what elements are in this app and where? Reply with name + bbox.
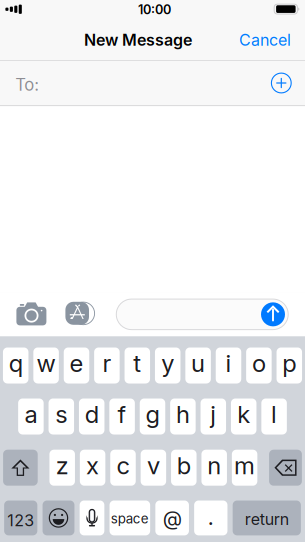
staticText: l [271, 400, 277, 429]
button[interactable]: Delete [269, 450, 302, 486]
button[interactable]: i [216, 347, 241, 383]
staticText: n [207, 451, 221, 480]
staticText: z [56, 451, 69, 480]
button[interactable]: h [170, 398, 196, 434]
button[interactable]: Dictation [80, 500, 104, 535]
button[interactable]: App Store [66, 301, 95, 325]
button[interactable]: k [231, 398, 256, 434]
button[interactable]: f [109, 398, 135, 434]
button[interactable]: m [232, 450, 257, 486]
staticText: s [55, 400, 67, 429]
staticText: b [177, 451, 191, 480]
button[interactable]: z [49, 450, 75, 486]
button[interactable]: c [110, 450, 136, 486]
staticText: h [176, 400, 190, 429]
staticText: New Message [84, 30, 192, 50]
button[interactable]: Camera [16, 302, 46, 325]
button[interactable]: q [3, 347, 28, 383]
button[interactable]: w [33, 347, 59, 383]
staticText: p [282, 349, 296, 378]
button[interactable]: y [155, 347, 180, 383]
button[interactable]: Send [261, 302, 285, 326]
staticText: Cancel [239, 30, 291, 50]
staticText: d [85, 400, 99, 429]
button[interactable]: Emoji [43, 500, 74, 535]
button[interactable]: 123 [4, 500, 37, 535]
staticText: r [102, 349, 111, 378]
button[interactable]: x [80, 450, 105, 486]
staticText: k [237, 400, 250, 429]
button[interactable]: Add contact [266, 68, 296, 98]
staticText: 123 [7, 511, 34, 530]
button[interactable]: @ [155, 500, 189, 535]
button[interactable]: u [185, 347, 211, 383]
button[interactable]: p [277, 347, 302, 383]
staticText: return [245, 509, 289, 529]
button[interactable]: l [261, 398, 287, 434]
staticText: q [9, 349, 23, 378]
staticText: To: [15, 75, 39, 95]
staticText: j [210, 400, 216, 429]
staticText: x [86, 451, 99, 480]
staticText: i [225, 349, 231, 378]
staticText: @ [163, 506, 182, 530]
staticText: c [116, 451, 129, 480]
staticText: g [145, 400, 159, 429]
staticText: u [191, 349, 205, 378]
staticText: space [111, 510, 149, 527]
button[interactable]: s [49, 398, 74, 434]
staticText: w [37, 349, 56, 378]
button[interactable]: d [79, 398, 104, 434]
staticText: t [133, 349, 141, 378]
staticText: v [147, 451, 160, 480]
button[interactable]: Shift [3, 450, 38, 486]
staticText: o [252, 349, 266, 378]
button[interactable]: j [201, 398, 226, 434]
button[interactable]: Cancel [227, 23, 291, 57]
button[interactable]: return [233, 500, 301, 535]
staticText: . [208, 504, 214, 530]
button[interactable]: o [246, 347, 272, 383]
button[interactable]: v [141, 450, 166, 486]
staticText: m [234, 451, 255, 480]
staticText: a [24, 400, 37, 429]
button[interactable]: t [124, 347, 150, 383]
button[interactable]: n [201, 450, 227, 486]
button[interactable]: a [18, 398, 44, 434]
button[interactable]: space [110, 500, 150, 535]
button[interactable]: r [94, 347, 120, 383]
staticText: 10:00 [138, 2, 171, 17]
button[interactable]: g [140, 398, 165, 434]
staticText: f [118, 400, 127, 429]
button[interactable]: . [194, 500, 227, 535]
button[interactable]: e [64, 347, 89, 383]
button[interactable]: b [171, 450, 197, 486]
staticText: y [161, 349, 174, 378]
staticText: e [69, 349, 83, 378]
